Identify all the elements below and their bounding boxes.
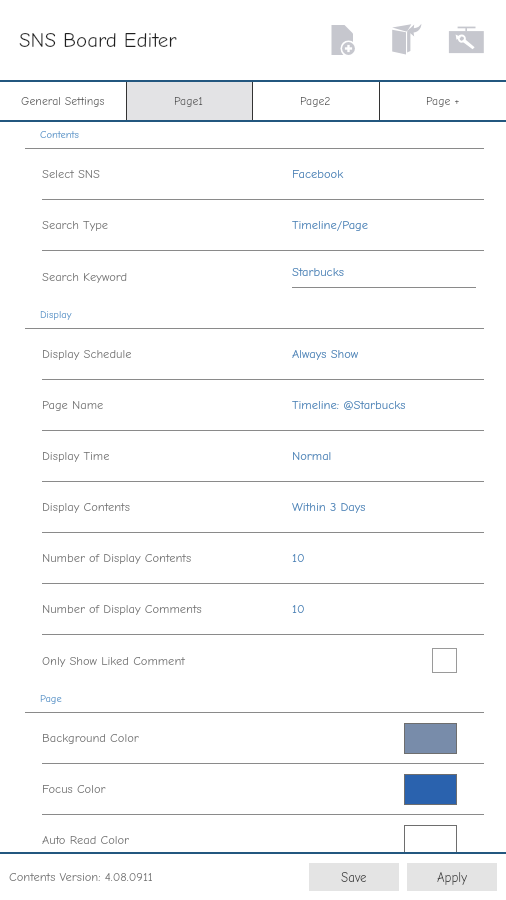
staticText: Focus Color (42, 782, 106, 796)
staticText: Number of Display Contents (42, 551, 192, 565)
staticText: Auto Read Color (42, 833, 130, 847)
button[interactable]: Search Type (0, 200, 506, 251)
staticText: SNS Board Editer (19, 28, 177, 52)
staticText: Timeline/Page (292, 218, 368, 232)
button[interactable]: Apply (407, 863, 497, 891)
staticText: Normal (292, 449, 332, 463)
staticText: Facebook (292, 167, 344, 181)
button[interactable]: Select SNS (0, 149, 506, 200)
button[interactable]: General Settings (0, 82, 126, 120)
button[interactable]: Page Name (0, 380, 506, 431)
button[interactable]: Display Schedule (0, 329, 506, 380)
staticText: Within 3 Days (292, 500, 366, 514)
button[interactable]: Save (309, 863, 399, 891)
button[interactable]: Focus Color (0, 764, 506, 815)
button[interactable]: Page1 (126, 82, 252, 120)
staticText: General Settings (21, 94, 105, 108)
staticText: Display Schedule (42, 347, 132, 361)
button[interactable]: Display Time (0, 431, 506, 482)
staticText: Timeline: @Starbucks (292, 398, 406, 412)
button[interactable]: Settings (443, 16, 489, 64)
staticText: Starbucks (292, 265, 344, 279)
staticText: Page1 (174, 94, 204, 108)
staticText: Select SNS (42, 167, 100, 181)
staticText: Search Type (42, 218, 109, 232)
button[interactable]: New page (322, 16, 362, 64)
staticText: Background Color (42, 731, 139, 745)
button[interactable]: Display Contents (0, 482, 506, 533)
staticText: Page + (426, 94, 460, 108)
staticText: Number of Display Comments (42, 602, 202, 616)
staticText: Always Show (292, 347, 359, 361)
button[interactable]: Background Color (0, 713, 506, 764)
staticText: Display Time (42, 449, 110, 463)
staticText: Search Keyword (42, 270, 128, 284)
staticText: 10 (292, 602, 305, 616)
staticText: Save (341, 870, 367, 885)
button[interactable]: Import board (385, 16, 427, 64)
staticText: Contents (40, 129, 79, 141)
button[interactable]: Only Show Liked Comment (0, 635, 506, 686)
staticText: Page Name (42, 398, 104, 412)
staticText: 10 (292, 551, 305, 565)
staticText: Contents Version: 4.08.0911 (9, 870, 153, 884)
button[interactable]: Page2 (252, 82, 379, 120)
staticText: Only Show Liked Comment (42, 654, 185, 668)
button[interactable]: Search Keyword (0, 251, 506, 302)
button[interactable]: Auto Read Color (0, 815, 506, 852)
button[interactable]: Number of Display Contents (0, 533, 506, 584)
staticText: Display (40, 309, 72, 321)
staticText: Apply (437, 870, 468, 885)
button[interactable]: Number of Display Comments (0, 584, 506, 635)
button[interactable]: Page + (379, 82, 506, 120)
staticText: Display Contents (42, 500, 130, 514)
staticText: Page2 (300, 94, 331, 108)
staticText: Page (40, 693, 62, 705)
